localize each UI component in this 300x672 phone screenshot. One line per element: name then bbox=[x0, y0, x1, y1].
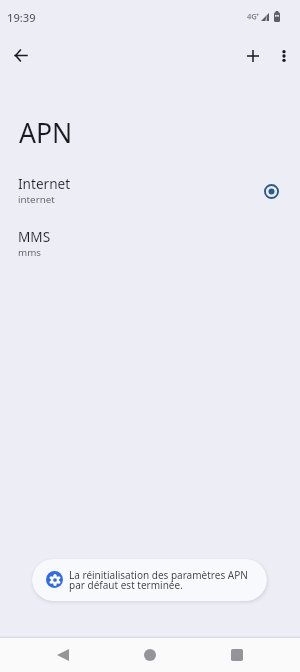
button[interactable]: Home bbox=[128, 638, 172, 672]
staticText: MMS bbox=[18, 227, 51, 246]
button[interactable]: Recents bbox=[215, 638, 259, 672]
staticText: 19:39 bbox=[7, 10, 36, 25]
staticText: APN bbox=[19, 115, 73, 151]
staticText: 4G bbox=[247, 11, 257, 21]
button[interactable]: Back bbox=[4, 39, 37, 72]
button[interactable]: MMS bbox=[0, 222, 300, 275]
staticText: La réinitialisation des paramètres APN p… bbox=[69, 568, 267, 592]
button[interactable]: La réinitialisation des paramètres APN p… bbox=[32, 559, 267, 601]
button[interactable]: More options bbox=[267, 39, 300, 72]
button[interactable]: Add APN bbox=[236, 39, 269, 72]
button[interactable]: Internet bbox=[0, 169, 300, 222]
staticText: Internet bbox=[18, 174, 71, 193]
staticText: mms bbox=[18, 246, 42, 259]
staticText: internet bbox=[18, 193, 55, 206]
staticText: + bbox=[256, 11, 260, 19]
button[interactable]: Back bbox=[41, 638, 85, 672]
